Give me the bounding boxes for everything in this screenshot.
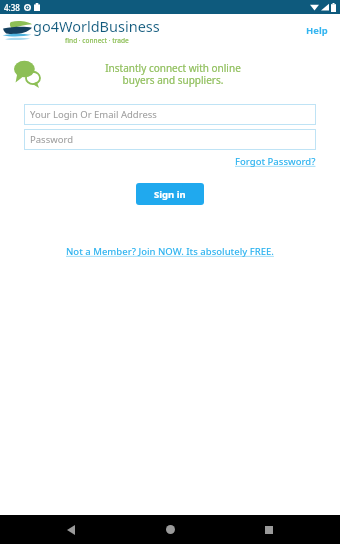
staticText: 4:38 [4,2,20,13]
staticText: Not a Member? Join NOW. Its absolutely F… [66,245,274,258]
button[interactable]: Password [24,129,316,150]
button[interactable]: Help [294,18,340,43]
button[interactable]: Forgot Password? [235,152,316,171]
button[interactable]: Not a Member? Join NOW. Its absolutely F… [62,241,278,262]
button[interactable]: Recent apps [250,515,288,544]
button[interactable]: Back [52,515,90,544]
button[interactable]: Your Login Or Email Address [24,104,316,125]
button[interactable]: Home [151,515,189,544]
staticText: Forgot Password? [235,155,316,168]
staticText: Password [30,133,73,146]
staticText: Help [306,24,328,37]
staticText: Instantly connect with online buyers and… [46,61,300,87]
staticText: Your Login Or Email Address [30,108,157,121]
staticText: find · connect · trade [65,36,129,45]
button[interactable]: go4WorldBusiness [2,16,160,45]
staticText: go4WorldBusiness [33,16,160,36]
button[interactable]: Sign in [136,183,204,205]
staticText: Sign in [154,188,186,201]
